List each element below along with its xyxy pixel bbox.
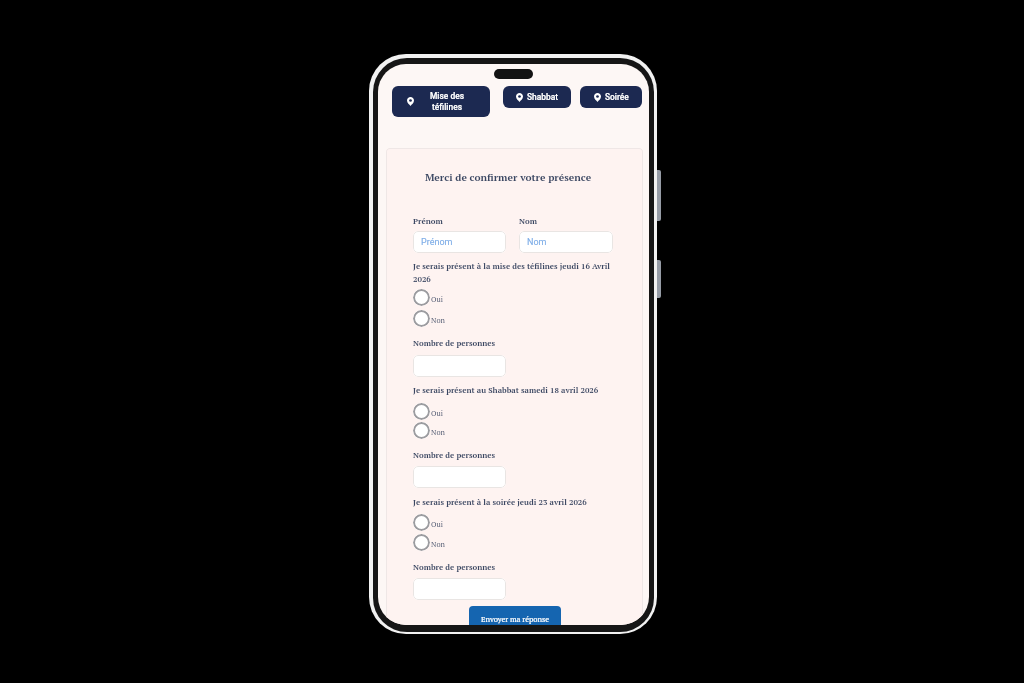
button[interactable]: Soirée — [580, 86, 642, 108]
staticText: Non — [431, 427, 445, 437]
staticText: Oui — [431, 294, 443, 304]
staticText: Nom — [519, 216, 537, 226]
staticText: Non — [431, 539, 445, 549]
button[interactable]: Nom — [519, 231, 613, 253]
button[interactable] — [413, 466, 506, 488]
staticText: Mise des téfilines — [430, 91, 464, 112]
button[interactable]: Non — [413, 422, 444, 439]
button[interactable]: Oui — [413, 514, 442, 531]
button[interactable]: Prénom — [413, 231, 506, 253]
staticText: Oui — [431, 519, 443, 529]
button[interactable]: Mise des téfilines — [392, 86, 490, 117]
button[interactable]: Oui — [413, 403, 442, 420]
staticText: Shabbat — [527, 92, 559, 102]
staticText: Nombre de personnes — [413, 562, 496, 572]
button[interactable]: Envoyer ma réponse — [469, 606, 561, 625]
staticText: Non — [431, 315, 445, 325]
staticText: Nombre de personnes — [413, 338, 496, 348]
button[interactable]: Non — [413, 310, 444, 327]
staticText: Je serais présent au Shabbat samedi 18 a… — [413, 385, 599, 395]
staticText: Je serais présent à la mise des téfiline… — [413, 261, 613, 284]
button[interactable] — [413, 578, 506, 600]
staticText: Soirée — [605, 92, 629, 102]
button[interactable]: Shabbat — [503, 86, 571, 108]
staticText: Prénom — [421, 237, 453, 248]
button[interactable]: Non — [413, 534, 444, 551]
staticText: Merci de confirmer votre présence — [408, 170, 608, 184]
button[interactable]: Oui — [413, 289, 442, 306]
staticText: Envoyer ma réponse — [481, 614, 550, 624]
staticText: Nombre de personnes — [413, 450, 496, 460]
staticText: Prénom — [413, 216, 443, 226]
staticText: Je serais présent à la soirée jeudi 23 a… — [413, 497, 587, 507]
staticText: Oui — [431, 408, 443, 418]
button[interactable] — [413, 355, 506, 377]
staticText: Nom — [527, 237, 547, 248]
